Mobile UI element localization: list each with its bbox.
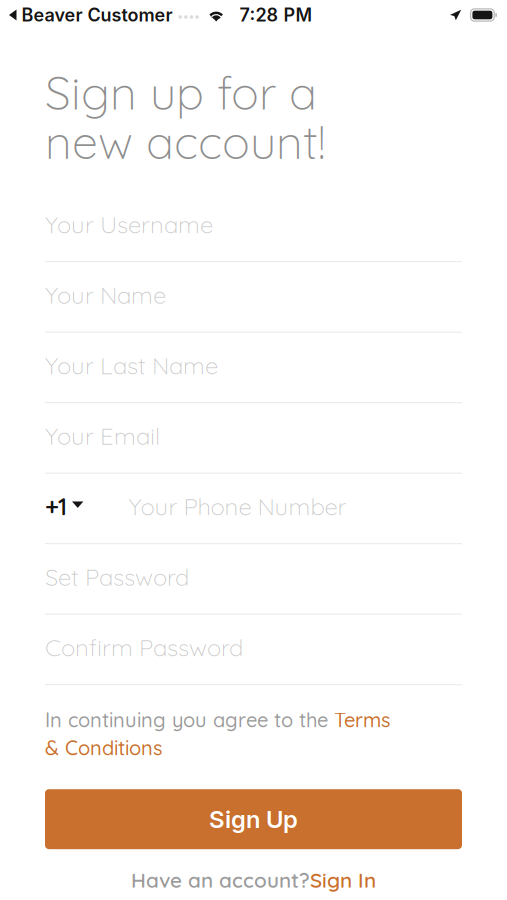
staticText: Your Email	[45, 421, 160, 451]
staticText: Your Phone Number	[128, 491, 346, 521]
staticText: In continuing you agree to the	[45, 707, 334, 732]
staticText: Confirm Password	[45, 632, 243, 662]
button[interactable]: Sign In	[310, 867, 376, 893]
button[interactable]: Terms	[334, 707, 390, 732]
staticText: Your Name	[45, 280, 166, 310]
staticText: Sign up for a	[45, 63, 317, 121]
staticText: Your Last Name	[45, 350, 218, 380]
staticText: 7:28 PM	[239, 4, 312, 26]
button[interactable]: Sign Up	[45, 789, 462, 849]
staticText: Sign In	[310, 867, 376, 893]
staticText: Sign Up	[209, 805, 298, 834]
button[interactable]: Set Password	[45, 544, 462, 615]
staticText: Terms	[334, 707, 390, 732]
staticText: Beaver Customer	[21, 4, 172, 26]
button[interactable]: Your Last Name	[45, 333, 462, 403]
staticText: Your Username	[45, 209, 213, 239]
staticText: Have an account?	[131, 867, 310, 893]
button[interactable]: & Conditions	[45, 735, 162, 760]
button[interactable]: Your Email	[45, 403, 462, 474]
staticText: +1	[45, 491, 67, 521]
staticText: & Conditions	[45, 735, 162, 760]
button[interactable]: Your Name	[45, 262, 462, 333]
staticText: Set Password	[45, 562, 189, 592]
staticText: new account!	[45, 112, 325, 171]
button[interactable]: Confirm Password	[45, 615, 462, 685]
button[interactable]: +1	[45, 474, 462, 544]
button[interactable]: Your Username	[45, 192, 462, 262]
